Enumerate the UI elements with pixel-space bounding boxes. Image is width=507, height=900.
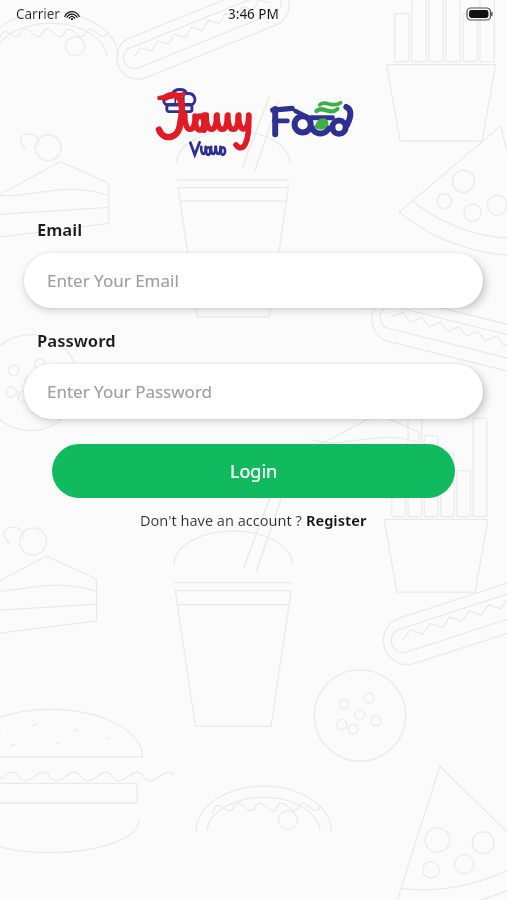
button[interactable]: Login	[52, 444, 455, 498]
button[interactable]: Don't have an account ?	[0, 510, 507, 530]
other: Juanmy Food Vendor logo	[153, 88, 355, 158]
staticText: Don't have an account ?	[140, 510, 306, 530]
staticText: Email	[37, 218, 83, 240]
other: Wi-Fi	[65, 9, 79, 20]
other: Battery full	[467, 8, 494, 20]
staticText: Login	[230, 459, 278, 484]
staticText: 3:46 PM	[228, 5, 279, 23]
button[interactable]: Enter Your Email	[24, 253, 483, 308]
staticText: Enter Your Email	[47, 269, 179, 292]
staticText: Enter Your Password	[47, 380, 213, 403]
staticText: Password	[37, 329, 116, 351]
staticText: Carrier	[16, 5, 60, 23]
button[interactable]: Enter Your Password	[24, 364, 483, 419]
staticText: Register	[306, 510, 367, 530]
